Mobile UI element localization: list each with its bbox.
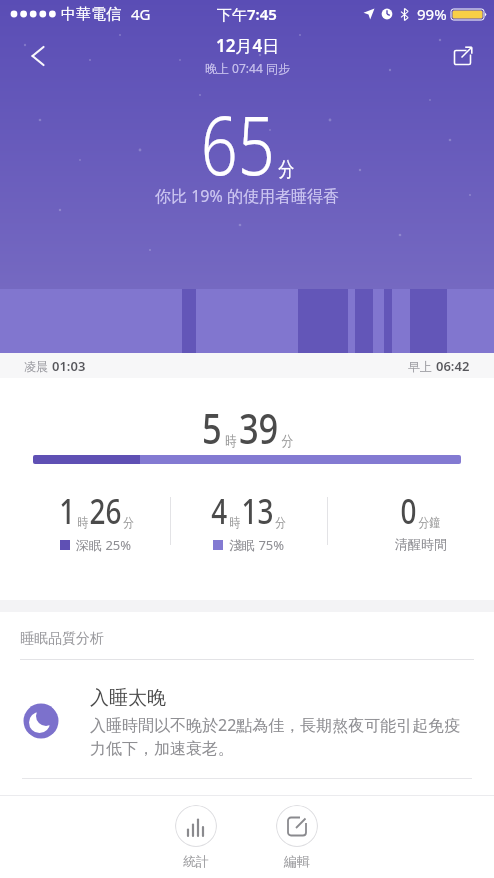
staticText: 深眠 25% xyxy=(76,536,132,554)
staticText: 睡眠品質分析 xyxy=(20,630,104,648)
staticText: 1 xyxy=(59,488,76,534)
staticText: 中華電信 xyxy=(61,5,121,24)
staticText: 5 xyxy=(202,399,222,456)
button[interactable]: 編輯 xyxy=(268,805,326,869)
staticText: 分 xyxy=(123,514,134,530)
staticText: 淺眠 75% xyxy=(229,536,285,554)
staticText: 26 xyxy=(89,488,121,534)
staticText: 入睡時間以不晚於22點為佳，長期熬夜可能引起免疫力低下，加速衰老。 xyxy=(90,714,468,759)
staticText: 13 xyxy=(241,488,273,534)
staticText: 4 xyxy=(211,488,228,534)
staticText: 12月4日 xyxy=(216,34,280,57)
staticText: 分 xyxy=(281,433,293,451)
staticText: 統計 xyxy=(183,853,209,869)
staticText: 65 xyxy=(201,88,275,198)
staticText: 分 xyxy=(278,157,294,182)
staticText: 0 xyxy=(400,488,417,534)
staticText: 時 xyxy=(77,514,88,530)
staticText: 清醒時間 xyxy=(395,536,447,552)
staticText: 晚上 07:44 同步 xyxy=(205,60,290,76)
staticText: 你比 19% 的使用者睡得香 xyxy=(155,185,339,207)
staticText: 分鐘 xyxy=(418,514,440,530)
staticText: 99% xyxy=(417,4,447,24)
staticText: 入睡太晚 xyxy=(90,686,166,710)
button[interactable] xyxy=(446,39,480,73)
staticText: 編輯 xyxy=(284,853,310,869)
button[interactable]: 入睡太晚 xyxy=(90,686,468,759)
staticText: 時 xyxy=(229,514,240,530)
button[interactable]: 統計 xyxy=(167,805,225,869)
staticText: 分 xyxy=(275,514,286,530)
staticText: 凌晨 xyxy=(24,358,52,374)
staticText: 4G xyxy=(131,4,151,24)
staticText: 時 xyxy=(225,433,236,451)
staticText: 早上 xyxy=(408,358,436,374)
staticText: 39 xyxy=(239,399,279,456)
staticText: 01:03 xyxy=(52,357,86,375)
button[interactable] xyxy=(20,38,56,74)
staticText: 下午7:45 xyxy=(217,4,277,24)
staticText: 06:42 xyxy=(436,357,470,375)
